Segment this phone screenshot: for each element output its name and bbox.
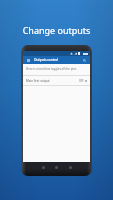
staticText: Change outputs — [0, 24, 113, 36]
staticText: Main first output — [26, 79, 79, 83]
button[interactable]: Back — [42, 166, 45, 169]
button[interactable]: Search — [82, 58, 87, 63]
staticText: OFF — [79, 79, 84, 83]
button[interactable]: Open navigation menu — [26, 58, 31, 63]
staticText: Outputs control — [34, 58, 82, 62]
button[interactable]: Main first output — [23, 76, 90, 85]
button[interactable]: Recents — [69, 166, 72, 169]
staticText: Here is a text that toggles all the pins — [26, 67, 77, 71]
button[interactable]: Home — [55, 166, 58, 169]
